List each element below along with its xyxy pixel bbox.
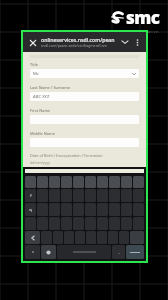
staticText: nsdl.com/paam-snds/verifiagmentCom <box>41 43 107 48</box>
button[interactable] <box>133 176 144 188</box>
button[interactable]: Expand <box>119 36 131 48</box>
button[interactable]: ABC XYZ <box>30 92 139 101</box>
button[interactable]: Enter <box>126 245 144 259</box>
staticText: Last Name / Surname <box>30 85 71 90</box>
staticText: q <box>29 207 32 212</box>
button[interactable]: q <box>25 203 36 216</box>
button[interactable]: Mr. <box>30 69 139 78</box>
button[interactable] <box>109 176 120 188</box>
button[interactable]: Space <box>57 245 111 259</box>
button[interactable]: More options <box>131 36 143 48</box>
button[interactable] <box>61 176 72 188</box>
staticText: Title <box>30 62 39 67</box>
staticText: m o n e y w i s e . b e w i s e . <box>111 29 160 34</box>
button[interactable]: Emoji <box>41 245 56 259</box>
button[interactable]: Symbols <box>25 245 40 259</box>
button[interactable] <box>25 176 36 188</box>
button[interactable] <box>73 176 84 188</box>
button[interactable] <box>49 176 60 188</box>
button[interactable]: Close <box>26 36 39 49</box>
staticText: . <box>118 250 120 255</box>
staticText: dd/mm/yyyy <box>30 160 50 165</box>
button[interactable] <box>37 176 48 188</box>
staticText: First Name <box>30 108 51 113</box>
button[interactable] <box>97 176 108 188</box>
button[interactable]: Shift <box>25 231 40 244</box>
staticText: smc <box>126 6 160 29</box>
staticText: ABC XYZ <box>33 94 50 100</box>
button[interactable] <box>121 176 132 188</box>
staticText: Mr. <box>33 71 132 77</box>
staticText: Date of Birth / Incorporation / Formatio… <box>30 153 103 158</box>
staticText: f <box>30 193 32 198</box>
button[interactable] <box>85 176 96 188</box>
button[interactable]: f <box>25 189 36 202</box>
button[interactable]: . <box>112 245 125 259</box>
staticText: Middle Name <box>30 131 55 136</box>
button[interactable]: Backspace <box>130 231 144 244</box>
staticText: onlineservices.nsdl.com/pean <box>41 36 115 43</box>
